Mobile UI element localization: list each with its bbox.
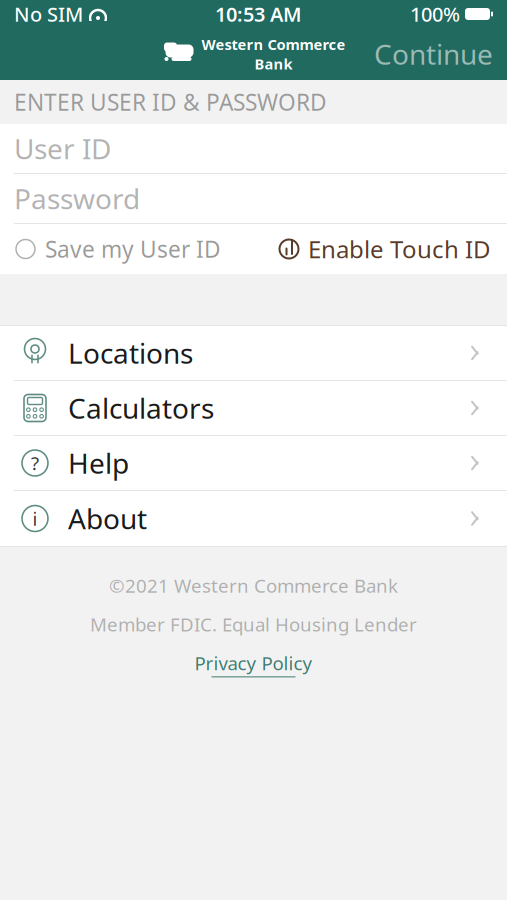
staticText: 10:53 AM — [215, 1, 302, 27]
staticText: ? — [31, 451, 39, 475]
staticText: ©2021 Western Commerce Bank — [109, 573, 398, 598]
button[interactable]: Continue — [360, 27, 507, 81]
staticText: Member FDIC. Equal Housing Lender — [90, 612, 417, 637]
button[interactable]: Locations — [0, 326, 507, 381]
button[interactable]: ? — [0, 436, 507, 491]
staticText: Locations — [68, 334, 193, 372]
button[interactable]: i — [0, 491, 507, 546]
staticText: Calculators — [68, 389, 214, 427]
staticText: i — [32, 506, 37, 531]
button[interactable]: Enable Touch ID — [278, 221, 491, 277]
staticText: Password — [14, 180, 140, 217]
staticText: About — [68, 500, 147, 537]
staticText: User ID — [14, 130, 111, 167]
button[interactable]: Privacy Policy — [188, 637, 318, 681]
staticText: 100% — [410, 1, 460, 27]
staticText: Enable Touch ID — [308, 233, 491, 265]
staticText: Help — [68, 444, 129, 482]
button[interactable]: Calculators — [0, 381, 507, 436]
staticText: Privacy Policy — [194, 651, 312, 675]
staticText: ENTER USER ID & PASSWORD — [14, 87, 327, 117]
staticText: Save my User ID — [45, 234, 221, 264]
staticText: Continue — [374, 35, 493, 73]
button[interactable]: Save my User ID — [16, 222, 221, 276]
staticText: Western Commerce — [201, 34, 345, 54]
staticText: Bank — [254, 54, 292, 73]
staticText: No SIM — [14, 1, 83, 27]
